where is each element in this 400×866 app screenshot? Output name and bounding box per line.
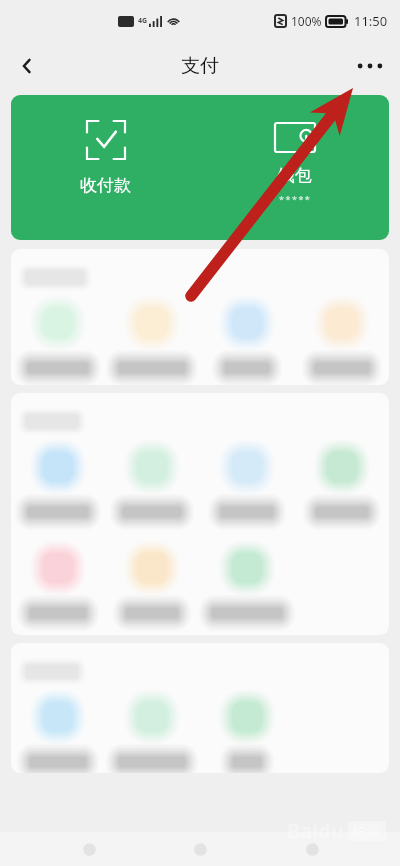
button[interactable]: Navigation [289, 836, 335, 862]
button[interactable]: 收付款 [11, 95, 200, 240]
staticText: 11:50 [354, 12, 388, 30]
button[interactable] [308, 302, 376, 379]
button[interactable] [119, 547, 185, 624]
staticText: 支付 [181, 54, 219, 78]
button[interactable] [205, 547, 289, 624]
button[interactable] [225, 696, 269, 773]
button[interactable]: Navigation [177, 836, 223, 862]
button[interactable] [309, 446, 375, 523]
button[interactable] [112, 302, 192, 379]
button[interactable] [21, 446, 95, 523]
staticText: 100% [291, 13, 322, 29]
button[interactable] [23, 696, 93, 773]
button[interactable] [218, 302, 276, 379]
button[interactable] [214, 446, 280, 523]
button[interactable] [23, 547, 93, 624]
button[interactable]: Back [6, 45, 48, 87]
button[interactable] [112, 696, 192, 773]
button[interactable] [116, 446, 188, 523]
button[interactable]: More options [348, 44, 392, 88]
staticText: 钱包 [278, 165, 312, 186]
staticText: 收付款 [80, 175, 131, 196]
button[interactable]: Navigation [66, 836, 112, 862]
button[interactable]: 钱包 [200, 95, 389, 240]
button[interactable] [21, 302, 95, 379]
staticText: 4G [138, 16, 148, 26]
staticText: ***** [279, 193, 312, 205]
